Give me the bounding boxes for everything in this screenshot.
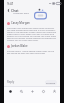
staticText: will follow up with the rest tomorrow. [7,52,46,54]
button[interactable]: Alerts [38,87,49,103]
staticText: before the design review meeting schedul… [7,37,57,39]
staticText: Jordan Blake [11,44,28,48]
button[interactable]: Jordan Blake [7,44,57,48]
staticText: Casey Morgan [11,21,30,25]
button[interactable]: Profile [49,87,60,103]
staticText: Assistant beta [13,11,29,14]
staticText: made to the settings screen layout for e… [7,31,57,33]
staticText: Chat [11,8,19,13]
button[interactable]: New [27,87,38,103]
staticText: Please take a look when you get a chance… [7,33,57,35]
staticText: Thanks for all of the help here. [7,39,39,41]
button[interactable]: Back [6,8,11,13]
staticText: directly on the thread so that we can tr… [7,35,57,37]
button[interactable]: Reply [7,80,15,84]
staticText: The team has shared the latest build not… [7,27,57,29]
button[interactable]: Casey Morgan [7,21,57,25]
staticText: the new onboarding flow and a short summ… [7,29,57,31]
staticText: 9:41 [7,1,14,6]
button[interactable]: Home [4,87,16,103]
staticText: Reply [7,80,15,84]
staticText: Sounds good. I have added a few notes to… [7,50,57,52]
staticText: Forward [46,81,56,84]
button[interactable]: Search [16,87,27,103]
button[interactable]: Forward [45,80,57,85]
